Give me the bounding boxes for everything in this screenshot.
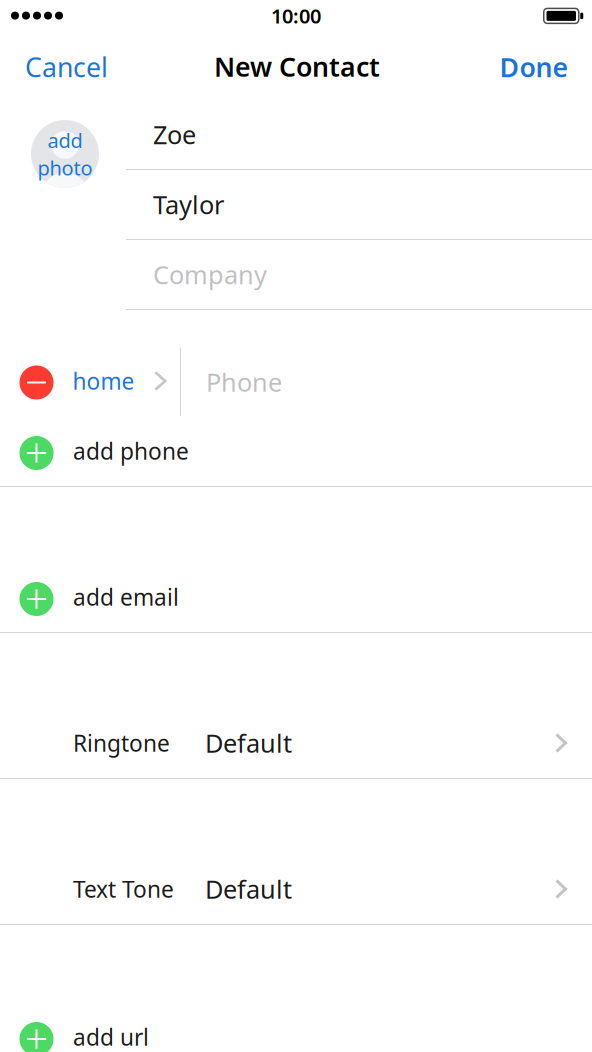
- button[interactable]: Cancel: [0, 41, 132, 93]
- button[interactable]: Company: [0, 240, 592, 309]
- staticText: Zoe: [153, 118, 196, 151]
- staticText: Taylor: [153, 188, 224, 221]
- staticText: add url: [73, 1022, 149, 1052]
- staticText: Cancel: [25, 49, 108, 85]
- staticText: Default: [205, 726, 292, 760]
- button[interactable]: Add photo: [31, 120, 99, 188]
- staticText: add phone: [73, 436, 189, 466]
- staticText: add email: [73, 582, 179, 612]
- staticText: Company: [153, 258, 267, 291]
- button[interactable]: Ringtone: [0, 708, 592, 778]
- staticText: add: [47, 127, 82, 153]
- button[interactable]: add email: [0, 562, 592, 632]
- staticText: Done: [499, 49, 568, 85]
- button[interactable]: Zoe: [0, 100, 592, 169]
- staticText: Ringtone: [73, 728, 170, 758]
- staticText: Text Tone: [73, 874, 174, 904]
- button[interactable]: Phone: [181, 348, 592, 416]
- staticText: Phone: [206, 365, 282, 399]
- button[interactable]: add phone: [0, 416, 592, 486]
- staticText: New Contact: [214, 49, 380, 84]
- button[interactable]: Remove home phone: [9, 352, 63, 412]
- button[interactable]: Text Tone: [0, 854, 592, 924]
- button[interactable]: add url: [0, 1002, 592, 1052]
- staticText: 10:00: [271, 2, 321, 29]
- button[interactable]: Done: [460, 41, 592, 93]
- staticText: Default: [205, 872, 292, 906]
- button[interactable]: home: [72, 351, 166, 411]
- staticText: photo: [37, 154, 92, 181]
- button[interactable]: Taylor: [0, 170, 592, 239]
- staticText: home: [72, 366, 134, 396]
